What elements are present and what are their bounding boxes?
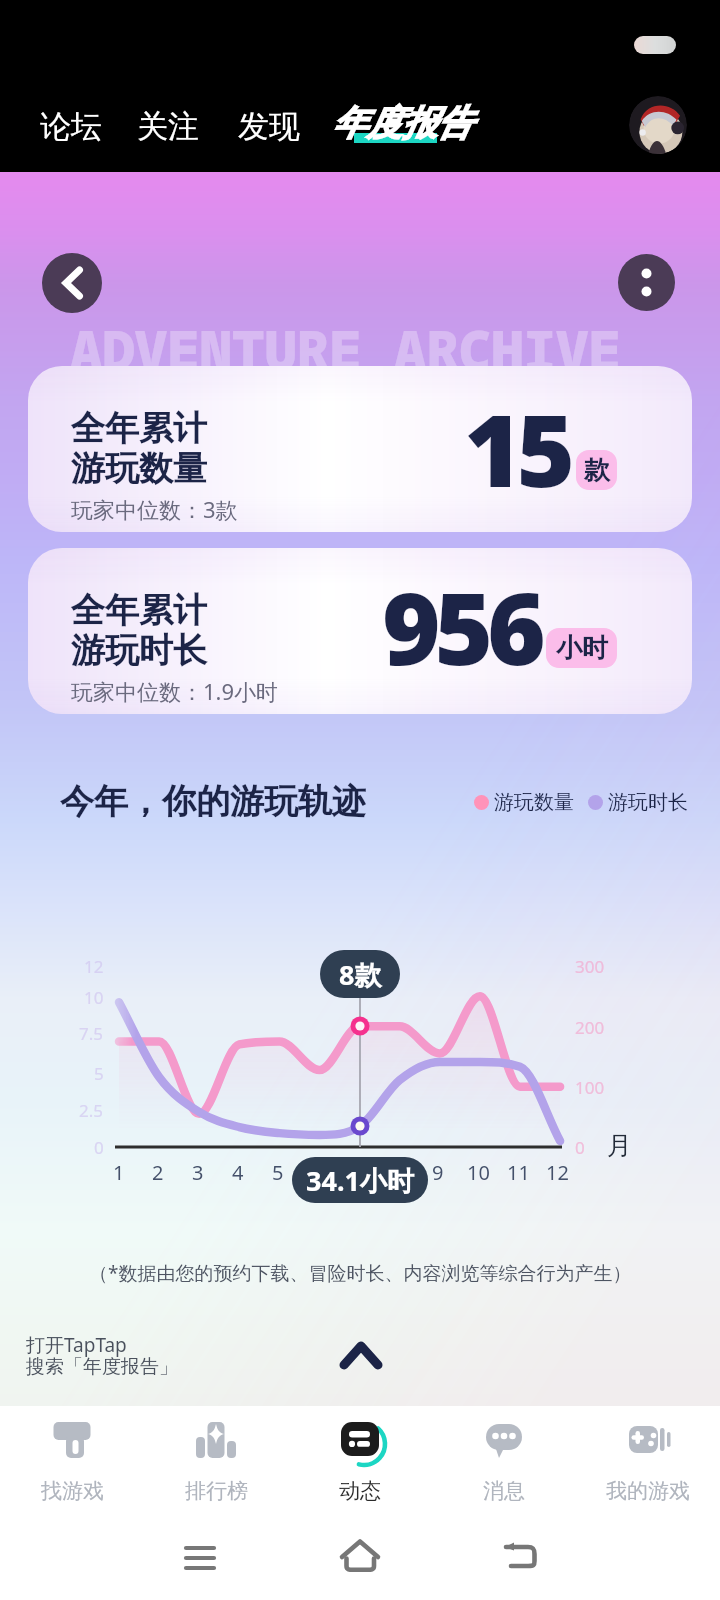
staticText: 5 [272, 1159, 284, 1186]
button[interactable]: 排行榜 [144, 1406, 288, 1520]
staticText: 打开TapTap [26, 1332, 127, 1358]
staticText: 排行榜 [185, 1478, 248, 1504]
staticText: 游玩数量 [494, 790, 574, 815]
staticText: 游玩时长 [71, 629, 207, 672]
staticText: 动态 [339, 1478, 381, 1504]
staticText: 玩家中位数：1.9小时 [71, 676, 279, 706]
staticText: 小时 [556, 632, 608, 665]
staticText: 4 [232, 1159, 244, 1186]
staticText: 12 [546, 1159, 569, 1186]
button[interactable]: Back [42, 253, 102, 313]
staticText: 6 [312, 1159, 324, 1186]
staticText: 年度报告 [332, 101, 472, 145]
staticText: 月 [607, 1130, 632, 1161]
staticText: 9 [432, 1159, 444, 1186]
staticText: 7.5 [79, 1022, 104, 1045]
staticText: 我的游戏 [606, 1478, 690, 1504]
staticText: 200 [575, 1016, 605, 1039]
staticText: 发现 [238, 107, 300, 146]
staticText: 全年累计 [71, 589, 207, 632]
staticText: 玩家中位数：3款 [71, 494, 238, 524]
staticText: 10 [84, 986, 104, 1009]
staticText: 100 [575, 1076, 605, 1099]
button[interactable]: More options [618, 254, 675, 311]
staticText: 2 [152, 1159, 164, 1186]
staticText: 3 [192, 1159, 204, 1186]
staticText: 关注 [137, 107, 199, 146]
button[interactable]: Home [310, 1520, 410, 1600]
staticText: 游玩数量 [71, 447, 207, 490]
staticText: （*数据由您的预约下载、冒险时长、内容浏览等综合行为产生） [89, 1260, 632, 1286]
staticText: 2.5 [79, 1099, 104, 1122]
staticText: 全年累计 [71, 407, 207, 450]
button[interactable]: 年度报告 [330, 101, 470, 145]
staticText: 15 [464, 380, 570, 516]
button[interactable]: 关注 [137, 107, 199, 146]
button[interactable]: 论坛 [40, 107, 102, 146]
button[interactable]: 找游戏 [0, 1406, 144, 1520]
staticText: 11 [507, 1159, 530, 1186]
staticText: 0 [94, 1136, 104, 1159]
staticText: 10 [467, 1159, 490, 1186]
button[interactable]: Profile [629, 96, 687, 154]
staticText: 300 [575, 955, 605, 978]
staticText: 7 [352, 1159, 364, 1186]
button[interactable]: 全年累计 [28, 548, 692, 714]
staticText: 搜索「年度报告」 [26, 1355, 178, 1379]
button[interactable]: Scroll up [330, 1332, 392, 1394]
staticText: 消息 [483, 1478, 525, 1504]
staticText: 0 [575, 1136, 585, 1159]
button[interactable]: Recents [150, 1520, 250, 1600]
staticText: 5 [94, 1062, 104, 1085]
staticText: 论坛 [40, 107, 102, 146]
button[interactable]: 消息 [432, 1406, 576, 1520]
staticText: 8 [392, 1159, 404, 1186]
staticText: 今年，你的游玩轨迹 [60, 780, 366, 823]
staticText: 找游戏 [41, 1478, 104, 1504]
button[interactable]: 全年累计 [28, 366, 692, 532]
staticText: 956 [382, 558, 540, 694]
button[interactable]: Back [470, 1520, 570, 1600]
staticText: 8款 [339, 956, 382, 993]
staticText: ADVENTURE ARCHIVE [70, 312, 621, 386]
staticText: 1 [113, 1159, 125, 1186]
staticText: 34.1小时 [306, 1162, 414, 1199]
staticText: 游玩时长 [608, 790, 688, 815]
button[interactable]: 我的游戏 [576, 1406, 720, 1520]
button[interactable]: 动态 [288, 1406, 432, 1520]
staticText: 12 [84, 955, 104, 978]
button[interactable]: 发现 [238, 107, 300, 146]
staticText: 款 [584, 454, 610, 487]
